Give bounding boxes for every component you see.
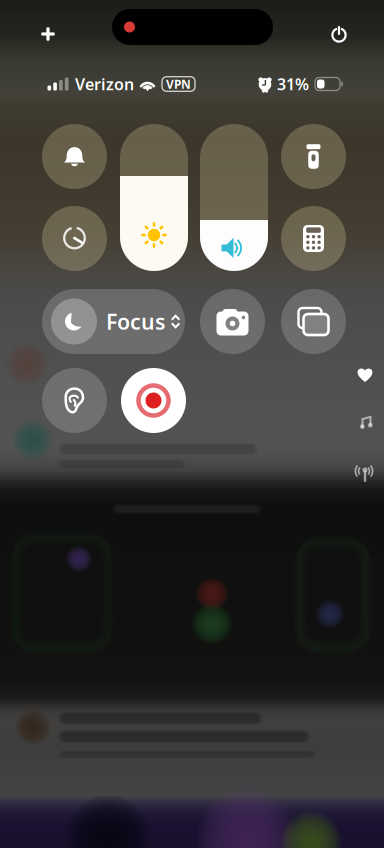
button[interactable]: Power — [325, 20, 353, 50]
button[interactable]: Camera — [200, 289, 265, 354]
button[interactable]: Add — [35, 21, 61, 47]
button[interactable]: Volume — [200, 124, 268, 271]
button[interactable]: Control — [42, 124, 107, 189]
button[interactable]: Now Playing — [357, 415, 374, 431]
staticText: Focus — [106, 307, 166, 336]
button[interactable]: Brightness — [120, 124, 188, 271]
button[interactable]: Focus — [42, 289, 185, 354]
button[interactable]: Control — [281, 206, 346, 271]
button[interactable]: Connectivity — [355, 464, 375, 482]
button[interactable]: Control — [281, 124, 346, 189]
button[interactable]: Screen Recording — [121, 368, 186, 433]
staticText: 31% — [277, 73, 309, 95]
staticText: Verizon — [75, 73, 134, 95]
button[interactable]: Hearing — [42, 368, 107, 433]
button[interactable]: Screen Mirroring — [281, 289, 346, 354]
button[interactable]: Control — [42, 206, 107, 271]
staticText: VPN — [166, 76, 191, 92]
button[interactable]: Home — [357, 366, 373, 383]
